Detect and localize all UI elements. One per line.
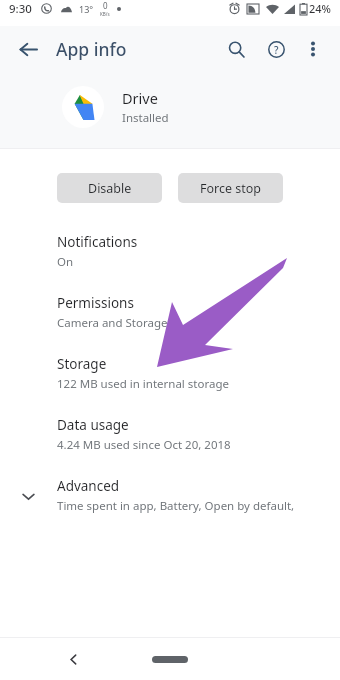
button[interactable]: Data usage — [0, 404, 340, 465]
staticText: ? — [274, 43, 279, 57]
staticText: 24% — [309, 1, 331, 16]
button[interactable]: Back — [12, 33, 44, 65]
button[interactable]: Help — [260, 33, 292, 65]
staticText: 4.24 MB used since Oct 20, 2018 — [57, 437, 231, 453]
staticText: KB/s — [100, 11, 110, 17]
staticText: Time spent in app, Battery, Open by defa… — [57, 498, 330, 514]
button[interactable]: Advanced — [0, 465, 340, 526]
staticText: On — [57, 254, 74, 270]
button[interactable]: Storage — [0, 343, 340, 404]
staticText: 122 MB used in internal storage — [57, 376, 229, 392]
staticText: Drive — [122, 88, 158, 108]
staticText: Camera and Storage — [57, 315, 168, 331]
button[interactable]: More options — [298, 34, 328, 64]
staticText: Storage — [57, 355, 107, 373]
button[interactable]: Drive — [0, 72, 340, 148]
staticText: Force stop — [200, 180, 262, 197]
staticText: Installed — [122, 110, 169, 126]
staticText: Data usage — [57, 416, 129, 434]
button[interactable]: Permissions — [0, 282, 340, 343]
staticText: App info — [56, 37, 127, 61]
staticText: 13° — [79, 3, 94, 15]
staticText: Notifications — [57, 233, 138, 251]
staticText: Advanced — [57, 477, 120, 495]
staticText: Disable — [88, 180, 132, 197]
button[interactable]: Search — [220, 33, 252, 65]
staticText: 9:30 — [9, 1, 32, 17]
staticText: Permissions — [57, 294, 134, 312]
button[interactable]: Back — [58, 644, 88, 674]
staticText: 0 — [103, 0, 108, 11]
button[interactable]: Notifications — [0, 221, 340, 282]
button[interactable]: Disable — [57, 173, 162, 203]
button[interactable]: Home — [152, 656, 188, 663]
button[interactable]: Force stop — [178, 173, 283, 203]
